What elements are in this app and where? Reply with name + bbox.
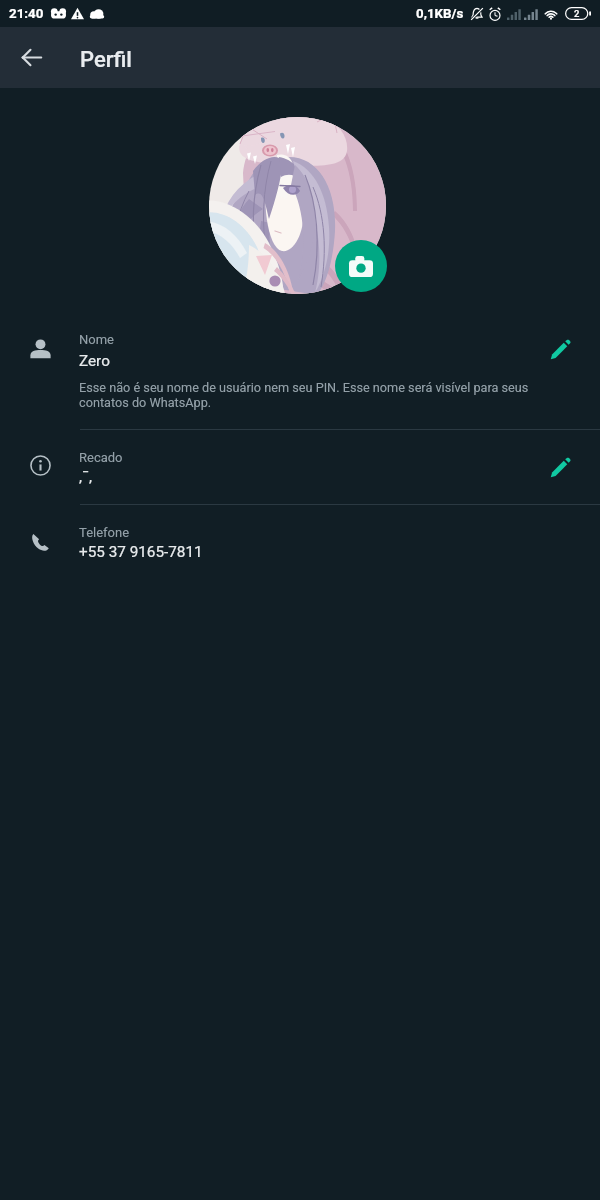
staticText: Nome [79, 332, 114, 347]
staticText: Perfil [80, 47, 132, 73]
staticText: 21:40 [9, 6, 44, 22]
button[interactable]: Telefone [0, 505, 600, 575]
staticText: ,¯, [79, 468, 93, 486]
staticText: +55 37 9165-7811 [79, 543, 203, 561]
button[interactable]: Nome [0, 318, 600, 429]
button[interactable]: Change profile photo [335, 240, 387, 292]
button[interactable]: Back [7, 33, 55, 81]
staticText: 0,1KB/s [416, 6, 464, 22]
staticText: Zero [79, 352, 110, 370]
button[interactable]: Edit status [538, 446, 582, 490]
button[interactable]: Edit name [538, 328, 582, 372]
staticText: Recado [79, 450, 123, 465]
staticText: 2 [574, 8, 580, 19]
button[interactable]: Profile photo [209, 117, 386, 294]
button[interactable]: Recado [0, 430, 600, 504]
staticText: Esse não é seu nome de usuário nem seu P… [79, 380, 549, 410]
staticText: Telefone [79, 525, 130, 540]
